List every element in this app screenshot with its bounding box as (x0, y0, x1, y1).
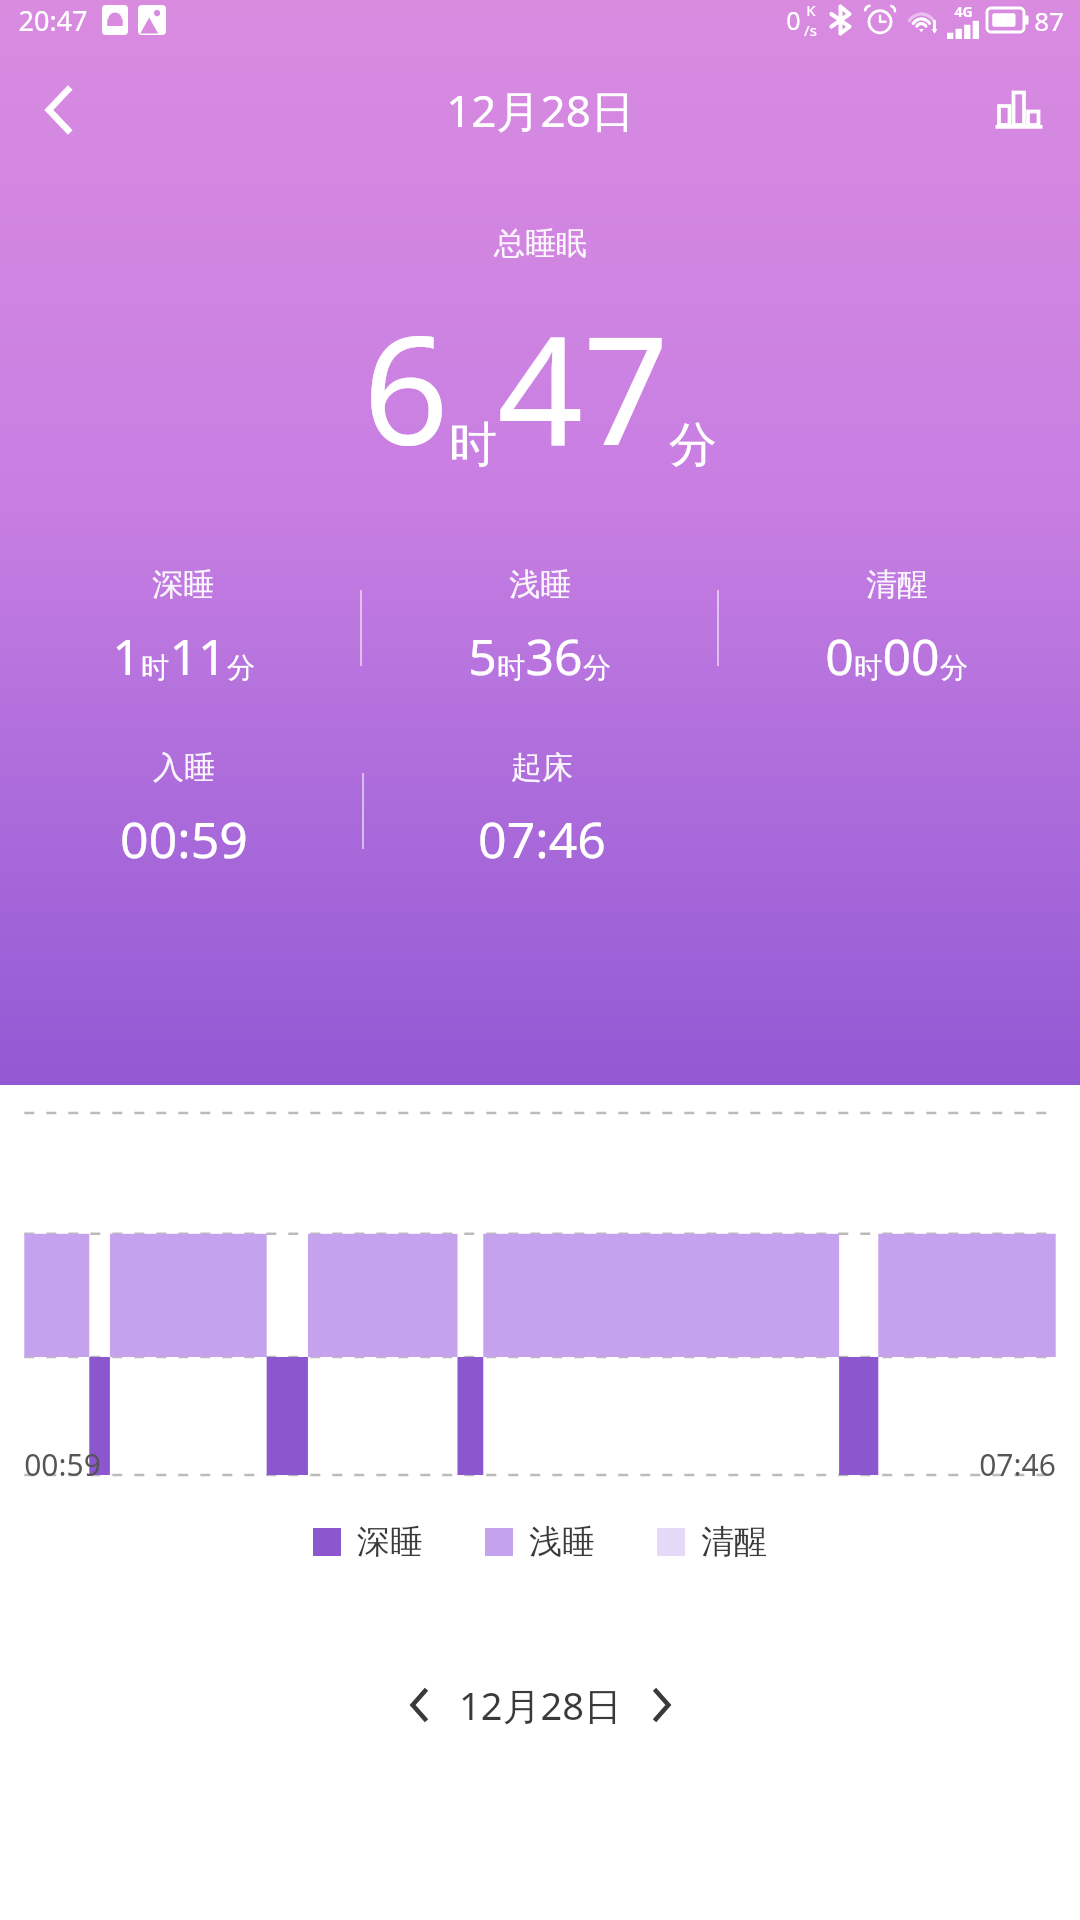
button[interactable]: Back (22, 73, 96, 147)
button[interactable]: Previous day (387, 1673, 451, 1737)
staticText: 00 (882, 622, 940, 690)
button[interactable]: 清醒 (657, 1521, 767, 1563)
staticText: 分 (583, 650, 611, 685)
staticText: 浅睡 (509, 565, 571, 604)
staticText: 07:46 (478, 805, 606, 873)
staticText: 起床 (511, 748, 573, 787)
staticText: 分 (940, 650, 968, 685)
staticText: 时 (141, 650, 169, 685)
button[interactable]: 12月28日 (459, 1679, 622, 1731)
staticText: 47 (497, 285, 669, 489)
staticText: 00:59 (24, 1444, 101, 1485)
staticText: 清醒 (701, 1521, 767, 1563)
staticText: 5 (468, 622, 497, 690)
staticText: 87 (1034, 3, 1064, 38)
button[interactable]: 深睡 (313, 1521, 423, 1563)
staticText: 11 (169, 622, 227, 690)
staticText: 36 (525, 622, 583, 690)
staticText: 4G (954, 2, 973, 21)
staticText: 20:47 (18, 2, 88, 39)
staticText: 00:59 (120, 805, 248, 873)
staticText: 深睡 (152, 565, 214, 604)
staticText: 12月28日 (459, 1679, 622, 1731)
staticText: 0 (825, 622, 854, 690)
staticText: 0 (786, 3, 801, 37)
button[interactable]: Next day (630, 1673, 694, 1737)
staticText: 时 (449, 415, 497, 475)
staticText: 12月28日 (446, 80, 635, 140)
staticText: 6 (363, 285, 449, 489)
staticText: 时 (854, 650, 882, 685)
staticText: /s (804, 20, 817, 40)
button[interactable]: Statistics (982, 73, 1056, 147)
staticText: 清醒 (866, 565, 928, 604)
staticText: 分 (669, 415, 717, 475)
staticText: 时 (497, 650, 525, 685)
staticText: 07:46 (979, 1444, 1056, 1485)
staticText: 1 (112, 622, 141, 690)
staticText: 分 (227, 650, 255, 685)
button[interactable]: 浅睡 (485, 1521, 595, 1563)
staticText: K (806, 0, 816, 20)
staticText: 入睡 (153, 748, 215, 787)
staticText: 浅睡 (529, 1521, 595, 1563)
staticText: 深睡 (357, 1521, 423, 1563)
staticText: 总睡眠 (494, 224, 587, 263)
